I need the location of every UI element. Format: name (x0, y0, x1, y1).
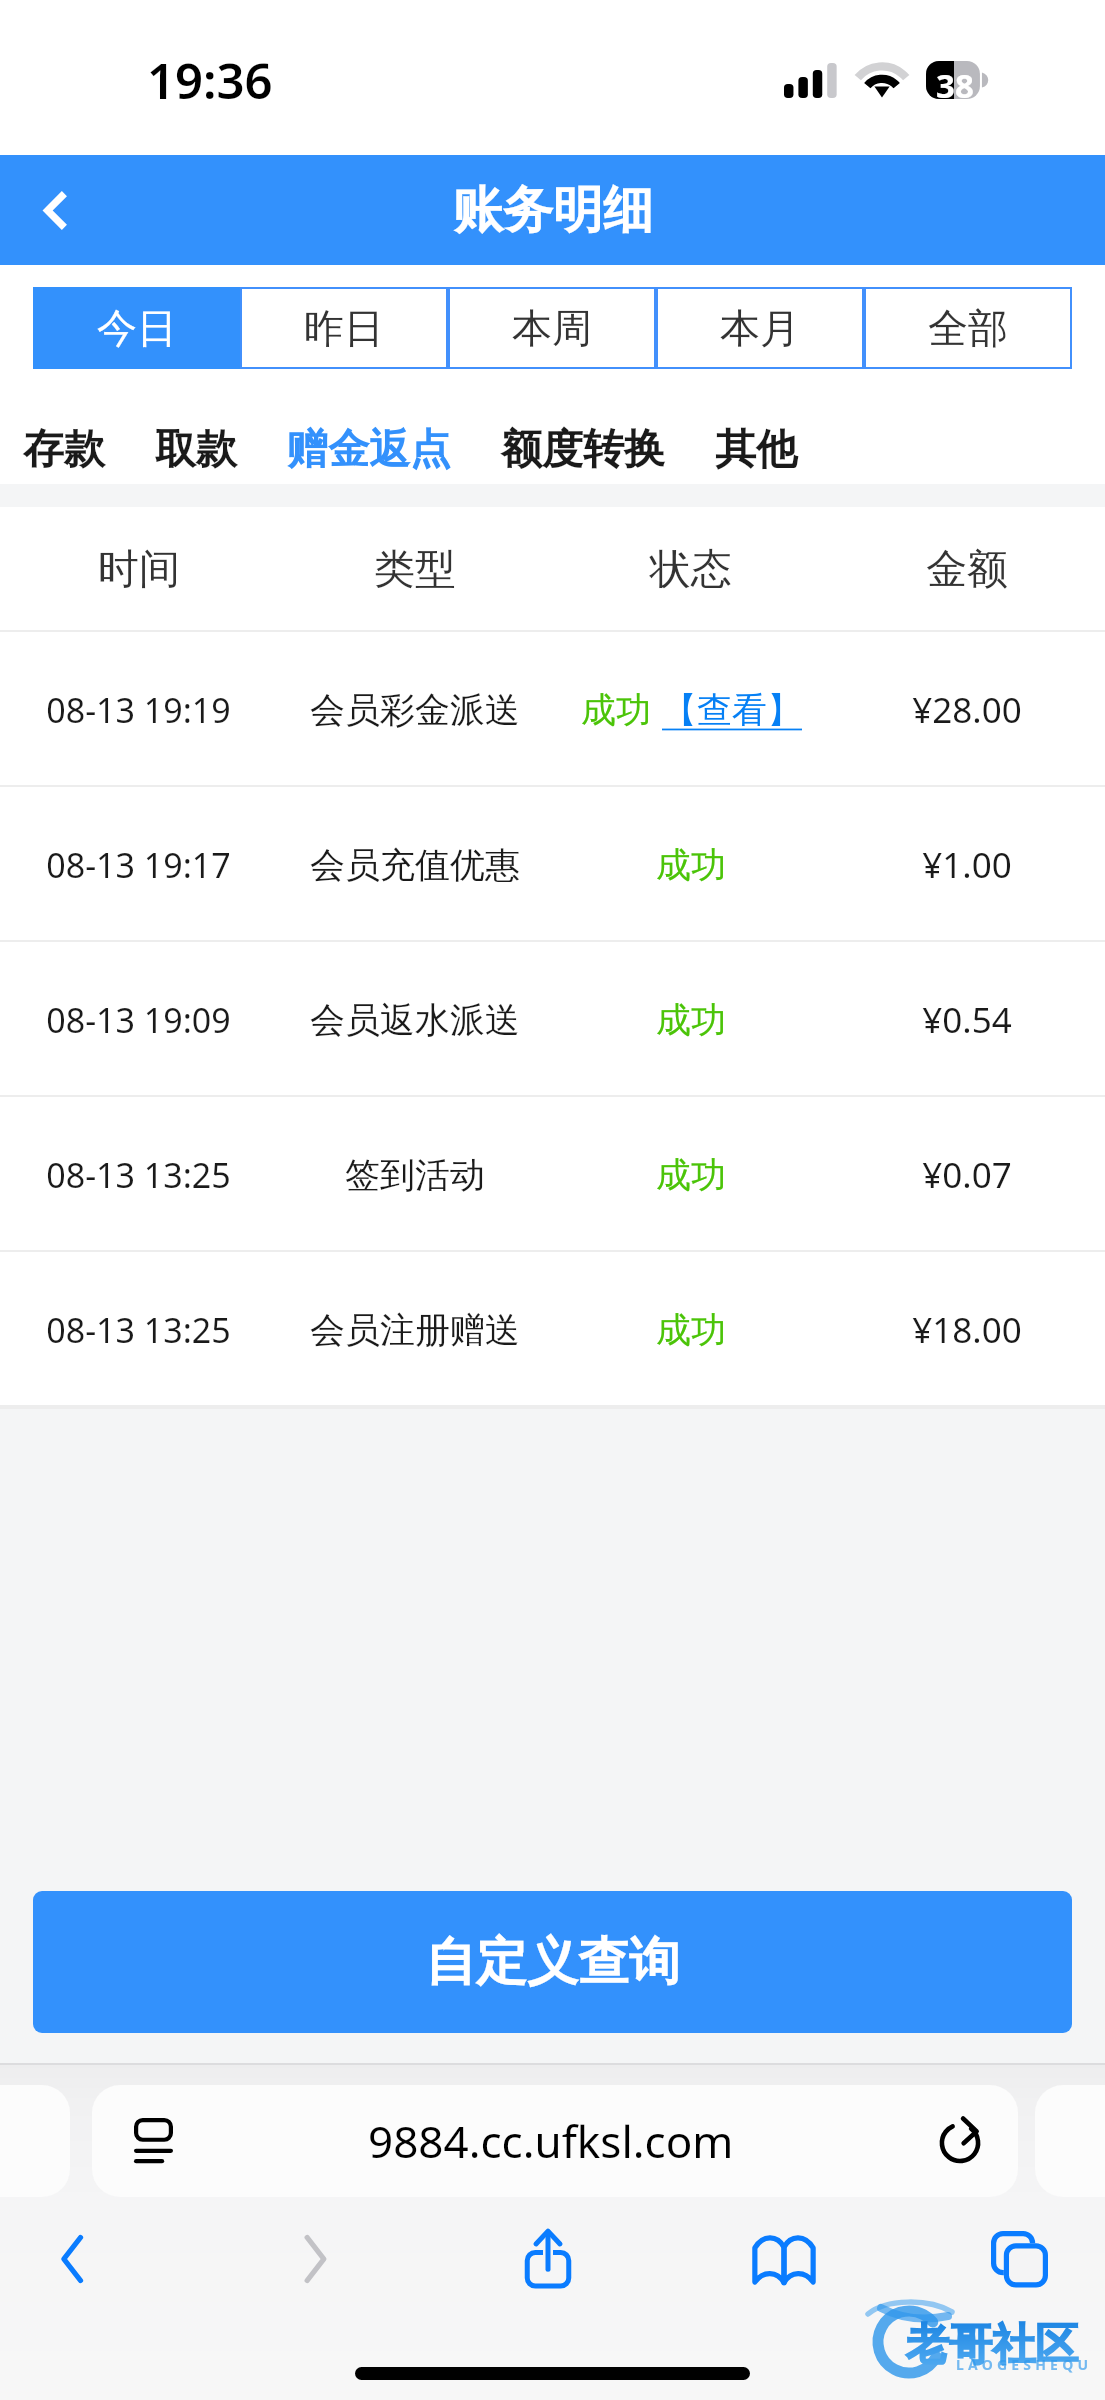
button[interactable]: 本周 (448, 287, 656, 369)
staticText: 38 (928, 63, 982, 108)
staticText: 会员注册赠送 (310, 1308, 520, 1352)
staticText: 08-13 13:25 (46, 1307, 231, 1353)
staticText: 【查看】 (662, 688, 802, 732)
staticText: 成功 (581, 688, 651, 732)
staticText: ¥1.00 (922, 841, 1012, 889)
button[interactable]: 08-13 13:25 (0, 1097, 1105, 1252)
staticText: 其他 (715, 424, 797, 476)
staticText: ¥0.07 (922, 1151, 1012, 1199)
staticText: 08-13 19:09 (46, 997, 231, 1043)
staticText: 今日 (97, 303, 177, 353)
button[interactable]: Bookmarks (729, 2204, 839, 2314)
staticText: ¥28.00 (912, 686, 1022, 734)
staticText: 老哥社区 (906, 2318, 1078, 2372)
staticText: ¥0.54 (922, 996, 1012, 1044)
staticText: 9884.cc.ufksl.com (368, 2111, 734, 2171)
staticText: 会员彩金派送 (310, 688, 520, 732)
staticText: 时间 (98, 544, 180, 596)
button[interactable]: 今日 (33, 287, 240, 369)
button[interactable]: Share (493, 2204, 603, 2314)
staticText: 账务明细 (453, 179, 653, 242)
staticText: 本月 (720, 303, 800, 353)
button[interactable]: Page settings (92, 2085, 1018, 2197)
staticText: 19:36 (147, 47, 273, 114)
button[interactable]: Forward (260, 2204, 370, 2314)
staticText: 08-13 19:19 (46, 687, 231, 733)
staticText: 取款 (155, 424, 237, 476)
staticText: 成功 (656, 843, 726, 887)
staticText: 赠金返点 (287, 424, 451, 476)
staticText: LAOGESHEQU (956, 2355, 1093, 2374)
staticText: 成功 (656, 998, 726, 1042)
button[interactable]: 本月 (656, 287, 864, 369)
button[interactable]: 08-13 19:09 (0, 942, 1105, 1097)
staticText: 成功 (656, 1153, 726, 1197)
button[interactable]: 【查看】 (662, 688, 802, 732)
button[interactable]: 昨日 (240, 287, 448, 369)
staticText: 会员充值优惠 (310, 843, 520, 887)
button[interactable]: 自定义查询 (33, 1891, 1072, 2033)
staticText: 额度转换 (501, 424, 665, 476)
staticText: 本周 (512, 303, 592, 353)
staticText: 全部 (928, 303, 1008, 353)
button[interactable]: 取款 (155, 424, 237, 476)
staticText: 08-13 13:25 (46, 1152, 231, 1198)
staticText: 状态 (650, 544, 732, 596)
staticText: 昨日 (304, 303, 384, 353)
staticText: 签到活动 (345, 1153, 485, 1197)
staticText: 存款 (23, 424, 105, 476)
button[interactable]: Page settings (113, 2098, 193, 2178)
button[interactable]: 08-13 19:19 (0, 632, 1105, 787)
staticText: ¥18.00 (912, 1306, 1022, 1354)
button[interactable]: 其他 (715, 424, 797, 476)
button[interactable]: 08-13 13:25 (0, 1252, 1105, 1407)
button[interactable]: Tabs (964, 2204, 1074, 2314)
staticText: 自定义查询 (425, 1930, 680, 1994)
button[interactable]: Back (0, 155, 110, 265)
button[interactable]: 存款 (23, 424, 105, 476)
button[interactable]: 08-13 19:17 (0, 787, 1105, 942)
staticText: 金额 (926, 544, 1008, 596)
staticText: 会员返水派送 (310, 998, 520, 1042)
button[interactable]: Reload (920, 2093, 1000, 2173)
staticText: 成功 (656, 1308, 726, 1352)
button[interactable]: 赠金返点 (287, 424, 451, 476)
staticText: 类型 (374, 544, 456, 596)
button[interactable]: Back (17, 2204, 127, 2314)
button[interactable]: 全部 (864, 287, 1072, 369)
staticText: 08-13 19:17 (46, 842, 231, 888)
button[interactable]: 额度转换 (501, 424, 665, 476)
